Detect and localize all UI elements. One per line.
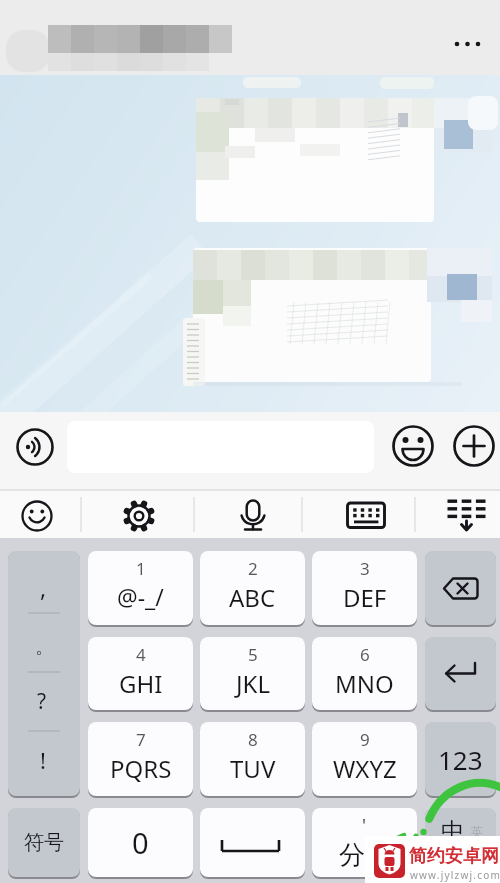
staticText: 4 <box>136 643 146 666</box>
staticText: DEF <box>343 581 387 614</box>
button[interactable]: 4 <box>88 637 193 710</box>
button[interactable]: 9 <box>312 722 417 796</box>
button[interactable]: 123 <box>425 722 496 796</box>
staticText: MNO <box>335 667 394 700</box>
button[interactable]: 3 <box>312 551 417 625</box>
staticText: TUV <box>230 752 276 785</box>
button[interactable]: 1 <box>88 551 193 625</box>
button[interactable] <box>454 426 494 466</box>
staticText: www.jylzwj.com <box>410 868 500 882</box>
button[interactable]: 7 <box>88 722 193 796</box>
staticText: 2 <box>248 557 258 580</box>
staticText: 6 <box>360 643 370 666</box>
button[interactable] <box>425 551 496 625</box>
button[interactable] <box>82 491 166 538</box>
staticText: 3 <box>360 557 370 580</box>
staticText: WXYZ <box>333 752 397 785</box>
staticText: @-_/ <box>117 581 164 612</box>
button[interactable] <box>0 491 81 538</box>
button[interactable]: 0 <box>88 808 193 877</box>
staticText: ? <box>37 687 47 716</box>
button[interactable]: 8 <box>200 722 305 796</box>
button[interactable] <box>200 808 305 877</box>
button[interactable] <box>195 491 279 538</box>
staticText: 8 <box>248 728 258 751</box>
staticText: GHI <box>119 667 163 700</box>
staticText: , <box>40 572 47 603</box>
staticText: JKL <box>236 667 270 700</box>
button[interactable] <box>416 491 500 538</box>
button[interactable]: 5 <box>200 637 305 710</box>
button[interactable]: 2 <box>200 551 305 625</box>
staticText: 1 <box>136 557 146 580</box>
button[interactable] <box>16 428 54 466</box>
staticText: ! <box>40 745 46 775</box>
staticText: 中 <box>441 817 464 846</box>
button[interactable] <box>8 551 80 796</box>
button[interactable] <box>393 426 433 466</box>
staticText: 分词 <box>339 839 391 872</box>
button[interactable]: 6 <box>312 637 417 710</box>
staticText: 9 <box>360 728 370 751</box>
staticText: 英 <box>471 824 483 839</box>
staticText: 123 <box>438 742 483 777</box>
button[interactable] <box>303 491 387 538</box>
staticText: 简约安卓网 <box>409 845 499 868</box>
staticText: 。 <box>35 635 54 659</box>
button[interactable] <box>312 808 417 877</box>
staticText: 5 <box>248 643 258 666</box>
staticText: 符号 <box>24 830 64 855</box>
staticText: ABC <box>229 581 276 614</box>
staticText: 7 <box>136 728 146 751</box>
button[interactable] <box>440 28 492 60</box>
staticText: 0 <box>132 823 149 862</box>
staticText: PQRS <box>110 752 172 785</box>
staticText: ' <box>362 813 367 838</box>
button[interactable] <box>425 637 496 710</box>
button[interactable] <box>425 808 496 877</box>
button[interactable]: 符号 <box>8 808 80 877</box>
